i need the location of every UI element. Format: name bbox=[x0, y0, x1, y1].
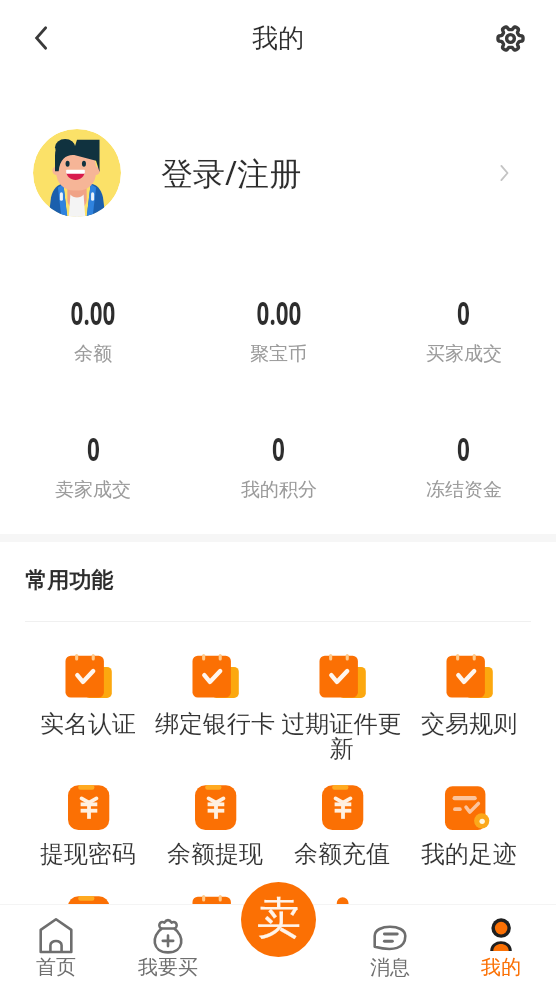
staticText: 冻结资金 bbox=[426, 478, 502, 502]
staticText: 登录/注册 bbox=[161, 151, 301, 195]
staticText: 卖家成交 bbox=[55, 478, 131, 502]
staticText: 0 bbox=[87, 426, 100, 471]
button[interactable]: 余额提现 bbox=[151, 776, 278, 869]
button[interactable]: 0 bbox=[0, 426, 186, 502]
staticText: 0 bbox=[272, 426, 285, 471]
button[interactable]: 过期证件更新 bbox=[278, 646, 405, 764]
button[interactable]: 0.00 bbox=[186, 290, 371, 366]
staticText: 常用功能 bbox=[25, 567, 113, 595]
staticText: 实名认证 bbox=[40, 709, 136, 739]
button[interactable]: 实名认证 bbox=[24, 646, 151, 739]
button[interactable]: 登录/注册 bbox=[0, 112, 556, 234]
staticText: 我的 bbox=[481, 955, 521, 980]
staticText: 提现密码 bbox=[40, 839, 136, 869]
staticText: 我的订单 bbox=[167, 950, 263, 980]
staticText: 我的 bbox=[252, 22, 304, 55]
staticText: 绑定银行卡 bbox=[155, 709, 275, 739]
button[interactable]: 我的发布 bbox=[278, 887, 405, 980]
staticText: 过期证件更新 bbox=[278, 709, 405, 764]
button[interactable]: 消息 bbox=[334, 904, 445, 988]
staticText: 余额 bbox=[74, 342, 112, 366]
staticText: 我的积分 bbox=[241, 478, 317, 502]
button[interactable]: 我的足迹 bbox=[405, 776, 532, 869]
staticText: 我的收藏 bbox=[40, 950, 136, 980]
staticText: 余额提现 bbox=[167, 839, 263, 869]
staticText: 聚宝币 bbox=[250, 342, 307, 366]
staticText: 余额充值 bbox=[294, 839, 390, 869]
button[interactable]: 0 bbox=[186, 426, 371, 502]
staticText: 卖 bbox=[257, 891, 301, 946]
staticText: 交易规则 bbox=[421, 709, 517, 739]
button[interactable]: Back bbox=[17, 14, 65, 62]
staticText: 我的发布 bbox=[294, 950, 390, 980]
button[interactable]: 提现密码 bbox=[24, 776, 151, 869]
button[interactable]: 帮助中心 bbox=[405, 887, 532, 980]
button[interactable]: Settings bbox=[488, 16, 532, 60]
button[interactable]: 我的订单 bbox=[151, 887, 278, 980]
button[interactable]: 卖 bbox=[241, 882, 316, 957]
staticText: 买家成交 bbox=[426, 342, 502, 366]
staticText: 首页 bbox=[36, 955, 76, 980]
staticText: 0.00 bbox=[71, 290, 115, 335]
staticText: 0.00 bbox=[257, 290, 301, 335]
button[interactable]: 我的 bbox=[445, 904, 556, 988]
button[interactable]: 余额充值 bbox=[278, 776, 405, 869]
button[interactable]: 0 bbox=[371, 426, 556, 502]
staticText: 我的足迹 bbox=[421, 839, 517, 869]
staticText: 0 bbox=[457, 426, 470, 471]
button[interactable]: 我的收藏 bbox=[24, 887, 151, 980]
staticText: 我要买 bbox=[138, 955, 198, 980]
button[interactable]: 首页 bbox=[0, 904, 112, 988]
button[interactable]: 交易规则 bbox=[405, 646, 532, 739]
button[interactable]: 0 bbox=[371, 290, 556, 366]
staticText: 消息 bbox=[370, 955, 410, 980]
staticText: 0 bbox=[457, 290, 470, 335]
button[interactable]: 我要买 bbox=[112, 904, 223, 988]
button[interactable]: 0.00 bbox=[0, 290, 186, 366]
button[interactable]: 绑定银行卡 bbox=[151, 646, 278, 739]
staticText: 帮助中心 bbox=[421, 950, 517, 980]
